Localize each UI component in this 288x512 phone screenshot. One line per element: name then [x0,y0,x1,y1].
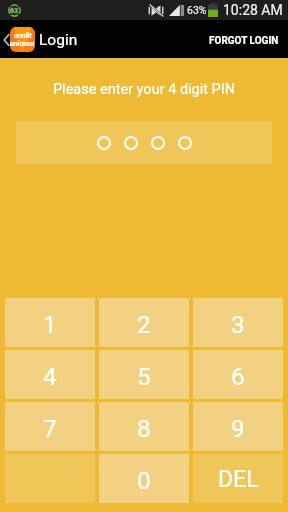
staticText: DEL [218,466,259,493]
staticText: 5 [137,362,151,390]
staticText: credit [14,32,32,40]
button[interactable]: FORGOT LOGIN [199,25,288,53]
staticText: 2 [137,310,151,338]
staticText: 63 [10,7,19,15]
button[interactable]: 7 [5,402,95,451]
button[interactable]: 0 [99,454,189,503]
button[interactable]: 6 [193,350,283,399]
staticText: 10:28 AM [223,2,283,18]
staticText: 63% [187,4,207,16]
button[interactable]: 8 [99,402,189,451]
staticText: Login [39,31,78,49]
staticText: unionsa [10,40,35,48]
button[interactable]: 9 [193,402,283,451]
staticText: 9 [231,414,245,442]
button[interactable]: Back [0,27,78,52]
staticText: 3 [231,310,245,338]
staticText: FORGOT LOGIN [209,35,279,47]
staticText: 8 [137,414,151,442]
staticText: 0 [137,466,151,494]
button[interactable]: 3 [193,298,283,347]
staticText: 4 [43,362,57,390]
staticText: 6 [231,362,245,390]
staticText: 7 [43,414,57,442]
button[interactable]: DEL [193,454,283,503]
other: Silent mode [148,4,164,17]
staticText: 1 [43,310,57,338]
button[interactable]: 4 [5,350,95,399]
button[interactable]: 5 [99,350,189,399]
button[interactable]: 2 [99,298,189,347]
staticText: Please enter your 4 digit PIN [0,81,288,98]
button[interactable]: 1 [5,298,95,347]
